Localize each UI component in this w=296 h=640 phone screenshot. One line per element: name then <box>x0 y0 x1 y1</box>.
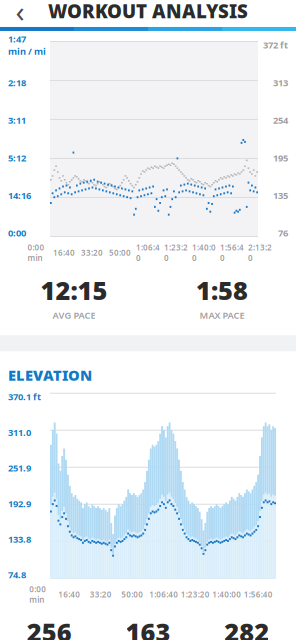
staticText: 0:00 min <box>27 242 44 263</box>
staticText: 1:06:40 <box>149 589 178 600</box>
staticText: 1:58 <box>196 273 248 307</box>
button[interactable]: Back <box>0 0 40 27</box>
staticText: 16:40 <box>58 589 80 600</box>
staticText: 1:23:20 <box>164 242 188 263</box>
staticText: 195 <box>273 152 288 164</box>
staticText: 5:12 <box>8 152 26 164</box>
staticText: 1:40:00 <box>192 242 216 263</box>
staticText: 1:56:40 <box>244 589 273 600</box>
staticText: 74.8 <box>8 568 26 581</box>
staticText: 16:40 <box>53 247 75 258</box>
staticText: 133.8 <box>8 533 31 545</box>
staticText: 76 <box>278 227 288 239</box>
staticText: 192.9 <box>8 497 31 510</box>
staticText: 2:13:20 <box>248 242 272 263</box>
staticText: 14:16 <box>8 189 31 202</box>
staticText: 0:00 min <box>29 584 46 605</box>
staticText: ELEVATION <box>8 365 92 385</box>
staticText: 1:40:00 <box>212 589 241 600</box>
staticText: 50:00 <box>121 589 143 600</box>
staticText: 12:15 <box>40 273 107 307</box>
staticText: 50:00 <box>109 247 131 258</box>
staticText: 282 <box>224 615 269 640</box>
staticText: 1:23:20 <box>181 589 210 600</box>
staticText: AVG PACE <box>52 309 95 321</box>
staticText: 256 <box>27 615 72 640</box>
staticText: WORKOUT ANALYSIS <box>48 0 248 23</box>
staticText: 311.0 <box>8 426 31 438</box>
staticText: 2:18 <box>8 76 26 89</box>
staticText: 0:00 <box>8 227 26 239</box>
staticText: 251.9 <box>8 462 31 474</box>
staticText: 135 <box>273 189 288 202</box>
staticText: ‹ <box>15 0 24 30</box>
staticText: MAX PACE <box>199 309 244 321</box>
staticText: 163 <box>125 615 170 640</box>
staticText: 3:11 <box>8 114 26 126</box>
staticText: 1:06:40 <box>136 242 160 263</box>
staticText: 370.1 ft <box>8 390 41 403</box>
staticText: 313 <box>273 76 288 89</box>
staticText: 1:47 min / mi <box>8 33 46 57</box>
staticText: 33:20 <box>81 247 103 258</box>
staticText: 1:56:40 <box>220 242 244 263</box>
staticText: 372 ft <box>263 39 288 51</box>
staticText: 33:20 <box>90 589 112 600</box>
staticText: 254 <box>273 114 288 126</box>
